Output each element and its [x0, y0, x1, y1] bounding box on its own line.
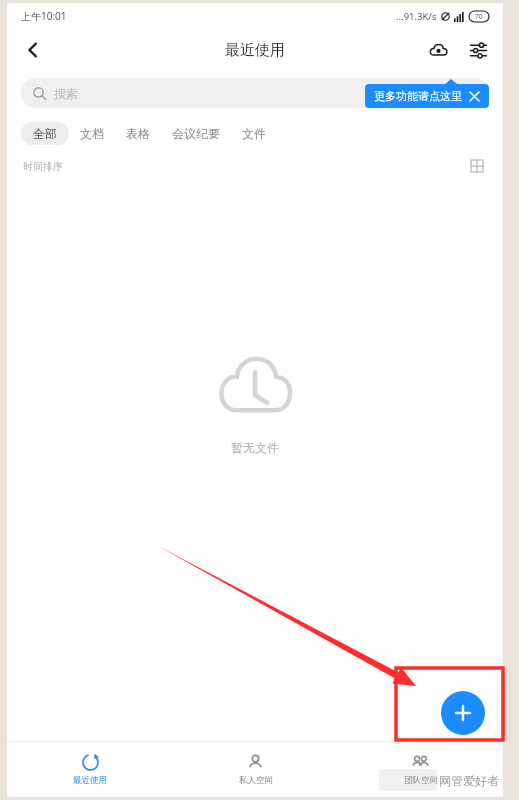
button[interactable]: Cloud transfer	[423, 35, 453, 65]
staticText: 暂无文件	[231, 440, 279, 455]
staticText: 网管爱好者	[439, 773, 499, 788]
staticText: 70	[475, 12, 483, 21]
button[interactable]: 会议纪要	[161, 121, 231, 146]
button[interactable]: Settings	[463, 35, 493, 65]
button[interactable]: New	[441, 691, 485, 735]
staticText: 会议纪要	[172, 126, 220, 141]
staticText: 搜索	[54, 86, 78, 101]
button[interactable]: 最近使用	[7, 742, 173, 797]
staticText: ...91.3K/s	[396, 10, 437, 23]
staticText: 私人空间	[239, 775, 273, 786]
button[interactable]: 表格	[115, 121, 161, 146]
staticText: 上午10:01	[21, 9, 67, 23]
button[interactable]: Grid view	[467, 156, 487, 176]
button[interactable]: 私人空间	[173, 742, 338, 797]
staticText: 全部	[33, 126, 57, 141]
staticText: 团队空间	[404, 775, 438, 786]
button[interactable]: 团队空间	[338, 742, 503, 797]
staticText: 时间排序	[23, 160, 63, 173]
button[interactable]: 时间排序	[23, 160, 63, 173]
button[interactable]: 更多功能请点这里	[365, 84, 489, 108]
staticText: 最近使用	[73, 775, 107, 786]
staticText: 文件	[242, 126, 266, 141]
staticText: 更多功能请点这里	[374, 89, 462, 103]
staticText: 文档	[80, 126, 104, 141]
button[interactable]: 全部	[21, 122, 69, 145]
staticText: 表格	[126, 126, 150, 141]
button[interactable]: Back	[15, 32, 51, 68]
button[interactable]: 文件	[231, 121, 277, 146]
button[interactable]: 文档	[69, 121, 115, 146]
button[interactable]: 搜索	[21, 78, 489, 108]
staticText: 最近使用	[225, 41, 285, 60]
